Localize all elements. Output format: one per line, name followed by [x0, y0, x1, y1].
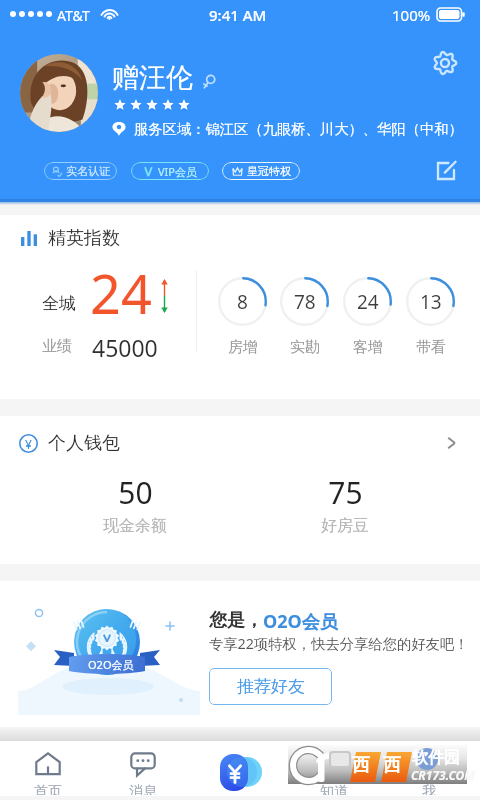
button[interactable]: 78	[280, 277, 329, 357]
button[interactable]: Wallet	[214, 747, 256, 789]
staticText: 个人钱包	[48, 432, 120, 455]
staticText: 实名认证	[66, 164, 110, 178]
button[interactable]: 首页	[18, 745, 78, 795]
button[interactable]: VIP会员	[131, 162, 209, 180]
staticText: O2O会员	[88, 657, 134, 672]
staticText: 软件园	[412, 748, 460, 768]
staticText: 西	[352, 754, 370, 777]
staticText: 皇冠特权	[247, 164, 291, 178]
button[interactable]: 知道	[304, 745, 364, 795]
button[interactable]: 皇冠特权	[222, 162, 300, 180]
button[interactable]: Edit profile	[436, 161, 456, 181]
staticText: 您是，	[209, 609, 263, 632]
staticText: CR173.COM	[411, 767, 475, 783]
staticText: 24	[90, 256, 152, 330]
staticText: 24	[357, 289, 379, 315]
staticText: 专享22项特权，快去分享给您的好友吧！	[209, 634, 469, 654]
button[interactable]: Profile photo	[20, 54, 98, 132]
staticText: O2O会员	[263, 609, 338, 634]
staticText: AT&T	[57, 6, 90, 25]
button[interactable]: 我	[399, 745, 459, 795]
button[interactable]: 24	[343, 277, 392, 357]
staticText: 西	[383, 754, 401, 777]
staticText: 赠汪伦	[112, 61, 193, 95]
button[interactable]: 50	[75, 472, 195, 536]
staticText: 消息	[129, 783, 157, 795]
staticText: 100%	[392, 5, 431, 25]
button[interactable]: 推荐好友	[209, 668, 332, 705]
staticText: 房增	[228, 338, 258, 357]
staticText: 带看	[416, 338, 446, 357]
button[interactable]: 消息	[113, 745, 173, 795]
button[interactable]: ¥	[0, 416, 480, 470]
staticText: ¥	[25, 436, 32, 452]
staticText: 知道	[320, 783, 348, 795]
staticText: 精英指数	[48, 227, 120, 250]
staticText: 75	[328, 472, 363, 513]
button[interactable]: 8	[218, 277, 267, 357]
staticText: 9:41 AM	[209, 5, 267, 25]
button[interactable]: 实名认证	[44, 162, 117, 180]
staticText: 78	[294, 289, 316, 315]
staticText: 服务区域：锦江区（九眼桥、川大）、华阳（中和）	[134, 120, 463, 138]
staticText: VIP会员	[158, 164, 197, 179]
button[interactable]: Settings	[431, 49, 459, 77]
staticText: 45000	[92, 332, 158, 363]
button[interactable]: 75	[285, 472, 405, 536]
staticText: 全城	[42, 293, 76, 314]
staticText: 首页	[34, 783, 62, 795]
staticText: 50	[118, 472, 153, 513]
staticText: 实勘	[290, 338, 320, 357]
staticText: 推荐好友	[237, 676, 305, 697]
staticText: 现金余额	[103, 516, 167, 536]
staticText: 好房豆	[321, 516, 369, 536]
staticText: 我	[422, 783, 436, 795]
button[interactable]: 13	[406, 277, 455, 357]
staticText: 业绩	[42, 337, 72, 356]
staticText: 13	[420, 289, 442, 315]
staticText: 8	[237, 289, 248, 315]
staticText: 客增	[353, 338, 383, 357]
